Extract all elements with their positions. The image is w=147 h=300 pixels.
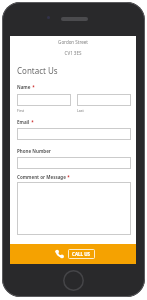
staticText: * — [30, 119, 34, 125]
button[interactable] — [17, 157, 131, 169]
staticText: CV1 3ES — [10, 50, 136, 56]
staticText: Phone Number — [17, 148, 51, 154]
staticText: Last — [77, 108, 84, 113]
staticText: Gordon Street — [10, 39, 136, 45]
staticText: * — [31, 84, 35, 90]
staticText: First — [17, 108, 25, 113]
staticText: Name — [17, 84, 31, 90]
button[interactable] — [17, 128, 131, 140]
button[interactable] — [17, 94, 71, 106]
staticText: Comment or Message — [17, 174, 66, 180]
staticText: * — [66, 174, 70, 180]
button[interactable] — [17, 182, 131, 235]
staticText: Email — [17, 119, 30, 125]
staticText: CALL US — [72, 251, 91, 257]
button[interactable] — [77, 94, 131, 106]
button[interactable]: CALL US — [10, 244, 136, 264]
staticText: Contact Us — [17, 65, 58, 76]
